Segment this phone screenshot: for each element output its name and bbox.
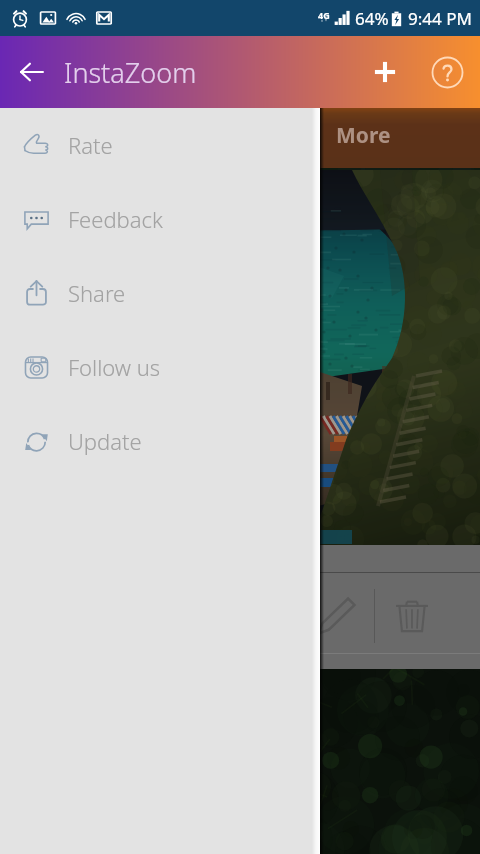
staticText: 4G <box>318 9 330 21</box>
button[interactable]: Rate <box>0 108 320 182</box>
staticText: 64% <box>355 7 389 30</box>
staticText: InstaZoom <box>64 54 197 91</box>
button[interactable]: Back <box>8 48 56 96</box>
staticText: Update <box>68 426 142 456</box>
staticText: Follow us <box>68 352 161 382</box>
button[interactable]: Follow us <box>0 330 320 404</box>
button[interactable]: Help <box>423 48 471 96</box>
button[interactable]: Delete <box>375 579 449 653</box>
staticText: Rate <box>68 130 113 160</box>
button[interactable]: Add <box>361 48 409 96</box>
staticText: Feedback <box>68 204 163 234</box>
button[interactable]: Feedback <box>0 182 320 256</box>
staticText: More <box>336 121 391 150</box>
button[interactable]: Update <box>0 404 320 478</box>
staticText: 9:44 PM <box>408 7 472 30</box>
button[interactable]: Edit <box>300 579 374 653</box>
staticText: Share <box>68 278 126 308</box>
button[interactable]: Share <box>0 256 320 330</box>
